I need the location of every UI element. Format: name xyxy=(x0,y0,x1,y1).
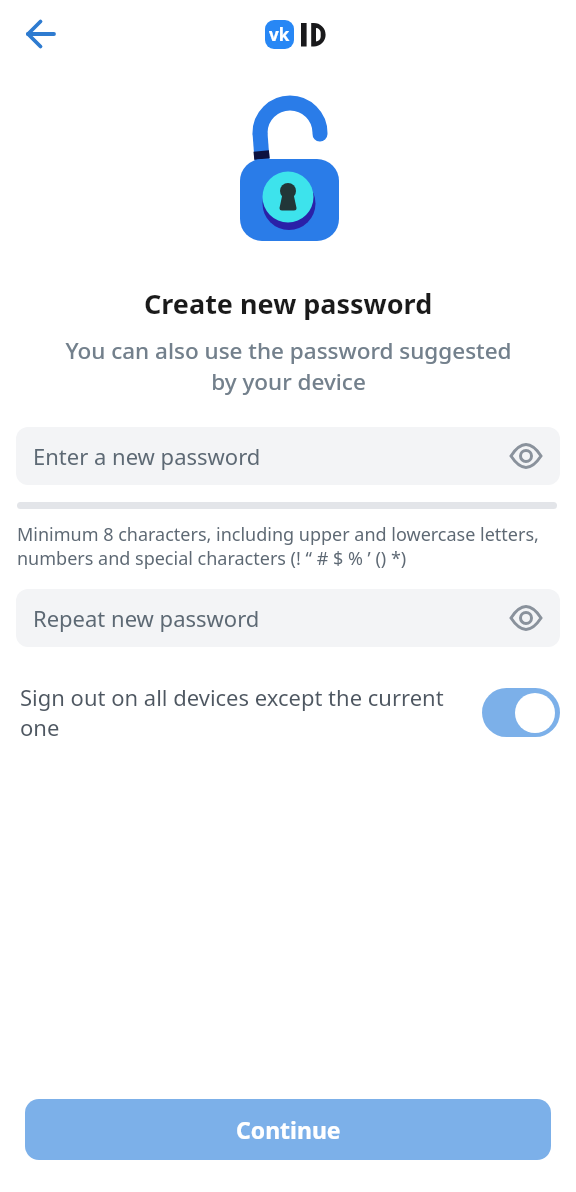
staticText: Continue xyxy=(236,1114,341,1145)
staticText: Create new password xyxy=(144,285,433,322)
staticText: Repeat new password xyxy=(33,603,260,633)
button[interactable]: Continue xyxy=(25,1099,551,1160)
staticText: Sign out on all devices except the curre… xyxy=(20,682,482,742)
button[interactable]: Enter a new password xyxy=(16,427,560,485)
button[interactable] xyxy=(14,10,62,58)
staticText: Enter a new password xyxy=(33,441,261,471)
staticText: vk xyxy=(269,23,290,46)
button[interactable]: vk xyxy=(265,20,326,49)
staticText: You can also use the password suggested … xyxy=(65,335,512,396)
staticText: Minimum 8 characters, including upper an… xyxy=(17,522,539,570)
button[interactable]: Sign out on all devices except the curre… xyxy=(20,682,560,742)
button[interactable]: Repeat new password xyxy=(16,589,560,647)
